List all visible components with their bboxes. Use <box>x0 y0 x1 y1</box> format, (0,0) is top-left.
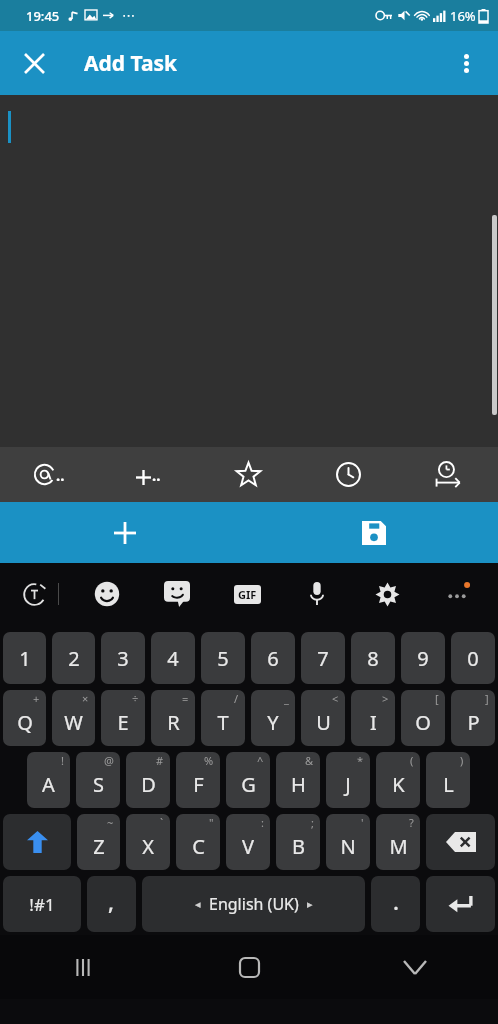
button[interactable]: Space <box>142 876 365 932</box>
staticText: ] <box>485 691 489 706</box>
button[interactable]: X <box>126 814 170 870</box>
staticText: 9 <box>417 645 429 672</box>
staticText: * <box>357 753 364 768</box>
button[interactable]: G <box>226 752 270 808</box>
button[interactable]: R <box>151 690 195 746</box>
staticText: " <box>209 815 214 830</box>
button[interactable]: Translate <box>14 574 54 614</box>
button[interactable]: Voice input <box>282 563 352 625</box>
staticText: Y <box>267 709 279 736</box>
staticText: L <box>443 771 454 798</box>
button[interactable]: 3 <box>101 632 145 684</box>
button[interactable]: 6 <box>251 632 295 684</box>
staticText: A <box>42 771 55 798</box>
button[interactable]: . <box>371 876 420 932</box>
button[interactable]: Recent apps <box>0 935 166 999</box>
button[interactable]: Duration <box>398 447 498 502</box>
button[interactable]: Keyboard settings <box>352 563 422 625</box>
staticText: + <box>33 691 40 706</box>
button[interactable]: Backspace <box>426 814 495 870</box>
staticText: 1 <box>19 645 31 672</box>
button[interactable]: Shift <box>3 814 71 870</box>
button[interactable]: 7 <box>301 632 345 684</box>
staticText: S <box>93 771 104 798</box>
staticText: ' <box>361 815 364 830</box>
staticText: [ <box>435 691 439 706</box>
staticText: Add Task <box>84 49 178 78</box>
staticText: R <box>167 709 180 736</box>
button[interactable]: More keyboard options <box>422 563 492 625</box>
button[interactable]: Add context <box>0 447 99 502</box>
button[interactable]: F <box>176 752 220 808</box>
staticText: .. <box>56 465 65 485</box>
button[interactable]: Stickers <box>142 563 212 625</box>
button[interactable]: Q <box>3 690 46 746</box>
button[interactable]: Add project <box>99 447 198 502</box>
button[interactable]: 4 <box>151 632 195 684</box>
button[interactable]: O <box>401 690 445 746</box>
staticText: ` <box>160 815 164 830</box>
button[interactable]: A <box>27 752 70 808</box>
staticText: 16% <box>450 7 476 25</box>
button[interactable]: Enter <box>426 876 495 932</box>
button[interactable]: D <box>126 752 170 808</box>
staticText: : <box>261 815 264 830</box>
staticText: 0 <box>467 645 479 672</box>
button[interactable]: B <box>276 814 320 870</box>
button[interactable]: I <box>351 690 395 746</box>
staticText: I <box>370 709 377 736</box>
button[interactable]: U <box>301 690 345 746</box>
staticText: ◂ <box>195 898 201 911</box>
button[interactable]: L <box>426 752 470 808</box>
button[interactable]: S <box>76 752 120 808</box>
staticText: X <box>142 833 154 860</box>
button[interactable]: P <box>451 690 495 746</box>
staticText: = <box>182 691 189 706</box>
staticText: 6 <box>267 645 279 672</box>
staticText: D <box>141 771 156 798</box>
staticText: % <box>204 753 214 768</box>
button[interactable]: Hide keyboard <box>332 935 498 999</box>
button[interactable]: , <box>87 876 136 932</box>
button[interactable]: Close <box>12 41 56 85</box>
staticText: > <box>382 691 389 706</box>
staticText: M <box>389 833 408 860</box>
button[interactable]: M <box>376 814 420 870</box>
button[interactable]: J <box>326 752 370 808</box>
button[interactable]: W <box>52 690 95 746</box>
staticText: H <box>291 771 306 798</box>
button[interactable]: 1 <box>3 632 46 684</box>
button[interactable]: K <box>376 752 420 808</box>
button[interactable]: 8 <box>351 632 395 684</box>
button[interactable]: T <box>201 690 245 746</box>
button[interactable]: N <box>326 814 370 870</box>
staticText: G <box>241 771 256 798</box>
button[interactable]: H <box>276 752 320 808</box>
staticText: ) <box>460 753 464 768</box>
staticText: ⋯ <box>122 8 135 23</box>
button[interactable]: More options <box>444 41 488 85</box>
button[interactable]: 5 <box>201 632 245 684</box>
button[interactable]: 2 <box>52 632 95 684</box>
button[interactable]: 0 <box>451 632 495 684</box>
button[interactable]: Add <box>0 502 249 563</box>
staticText: P <box>467 709 480 736</box>
button[interactable]: 9 <box>401 632 445 684</box>
button[interactable]: Y <box>251 690 295 746</box>
staticText: .. <box>152 465 161 485</box>
staticText: Q <box>17 709 33 736</box>
staticText: ~ <box>107 815 114 830</box>
button[interactable]: V <box>226 814 270 870</box>
staticText: GIF <box>238 587 257 602</box>
button[interactable]: !#1 <box>3 876 81 932</box>
button[interactable]: Emoji <box>71 563 142 625</box>
button[interactable]: C <box>176 814 220 870</box>
button[interactable]: Priority <box>198 447 298 502</box>
staticText: . <box>393 886 399 916</box>
button[interactable]: Set time <box>298 447 398 502</box>
button[interactable]: GIF <box>212 563 282 625</box>
button[interactable]: Z <box>77 814 120 870</box>
button[interactable]: Home <box>166 935 332 999</box>
button[interactable]: E <box>101 690 145 746</box>
button[interactable]: Save <box>249 502 498 563</box>
